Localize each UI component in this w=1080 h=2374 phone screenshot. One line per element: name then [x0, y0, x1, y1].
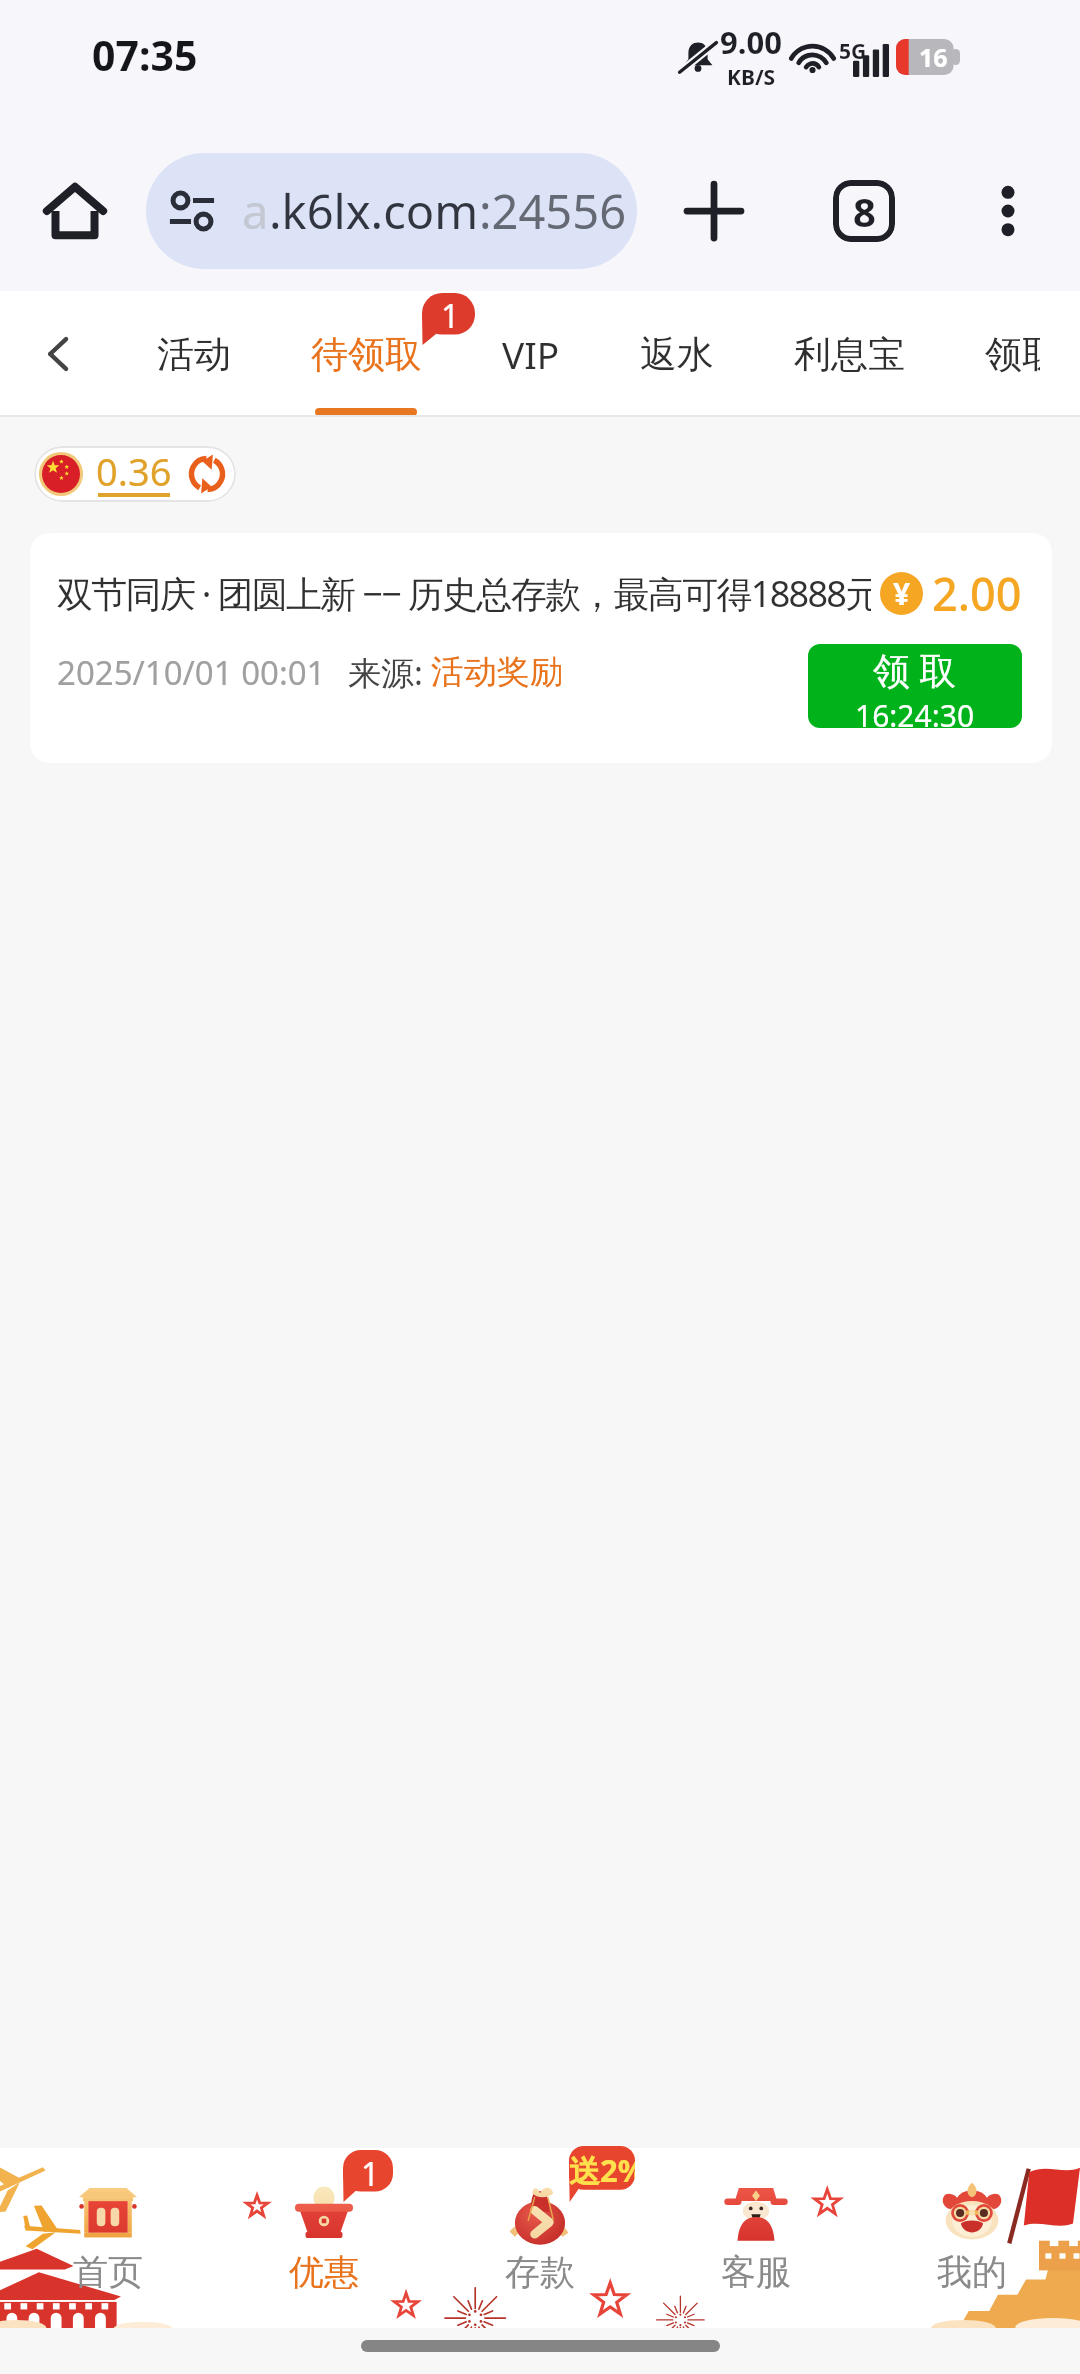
staticText: KB/S	[727, 63, 776, 92]
button[interactable]: VIP	[502, 291, 560, 417]
staticText: 来源:	[348, 650, 423, 695]
button[interactable]: 领取记	[985, 291, 1040, 417]
button[interactable]: New tab	[673, 170, 755, 252]
staticText: 5G	[839, 37, 867, 66]
staticText: 待领取	[311, 331, 422, 378]
button[interactable]: Tabs	[823, 170, 905, 252]
staticText: 16:24:30	[855, 695, 975, 728]
staticText: a	[242, 179, 269, 243]
button[interactable]: 送2%	[432, 2148, 648, 2328]
staticText: 利息宝	[794, 331, 905, 378]
staticText: 1	[361, 2152, 380, 2196]
button[interactable]: 1	[216, 2148, 432, 2328]
button[interactable]: 利息宝	[794, 291, 905, 417]
staticText: 1	[441, 294, 460, 338]
button[interactable]: 领 取	[808, 644, 1022, 728]
button[interactable]: Back	[0, 291, 117, 417]
staticText: 送2%	[569, 2149, 635, 2191]
staticText: 0.36	[96, 446, 172, 497]
staticText: 首页	[73, 2250, 143, 2294]
staticText: .k6lx.com	[269, 179, 479, 243]
button[interactable]: 我的	[864, 2148, 1080, 2328]
staticText: 领取记	[985, 331, 1040, 378]
button[interactable]: 0.36	[34, 446, 236, 502]
staticText: 优惠	[289, 2250, 359, 2294]
staticText: 返水	[640, 331, 714, 378]
staticText: 16	[919, 40, 948, 74]
staticText: 活动	[157, 331, 231, 378]
button[interactable]: 客服	[648, 2148, 864, 2328]
staticText: 双节同庆 · 团圆上新 −− 历史总存款，最高可得18888元	[57, 569, 871, 618]
staticText: 07:35	[92, 27, 198, 83]
staticText: :24556	[479, 179, 627, 243]
staticText: 我的	[937, 2250, 1007, 2294]
staticText: 2025/10/01 00:01	[57, 650, 326, 695]
button[interactable]: 返水	[640, 291, 714, 417]
staticText: ¥	[893, 573, 911, 614]
staticText: 活动奖励	[431, 651, 563, 693]
staticText: 领 取	[873, 644, 957, 695]
staticText: 8	[853, 184, 876, 238]
staticText: VIP	[502, 329, 560, 379]
staticText: 存款	[505, 2250, 575, 2294]
button[interactable]: 首页	[0, 2148, 216, 2328]
button[interactable]: 双节同庆 · 团圆上新 −− 历史总存款，最高可得18888元	[30, 533, 1052, 763]
button[interactable]: Home	[34, 170, 116, 252]
button[interactable]: 待领取	[311, 291, 422, 417]
staticText: 2.00	[932, 563, 1022, 624]
staticText: 9.00	[720, 21, 782, 63]
button[interactable]: More options	[967, 170, 1049, 252]
button[interactable]: a	[146, 153, 637, 269]
button[interactable]: 活动	[157, 291, 231, 417]
staticText: 客服	[721, 2250, 791, 2294]
